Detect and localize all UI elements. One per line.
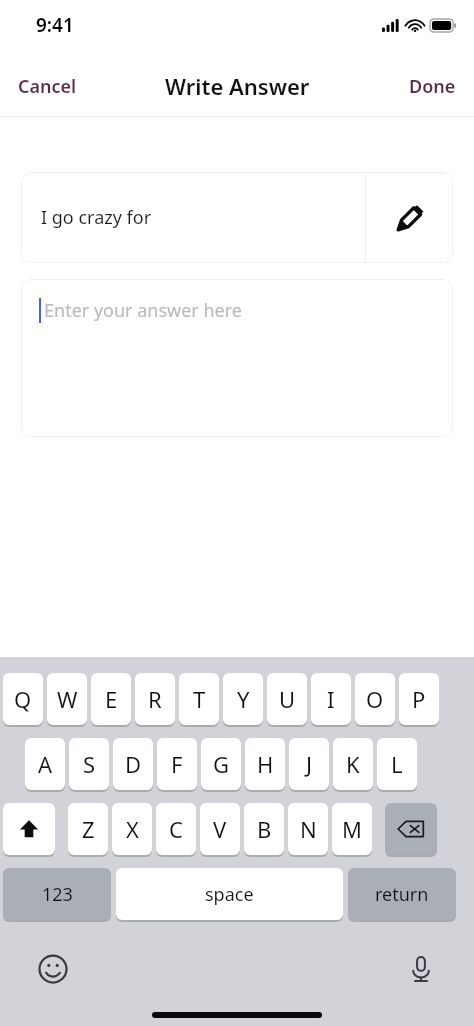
staticText: I	[327, 684, 335, 714]
staticText: space	[205, 882, 254, 907]
staticText: T	[193, 684, 206, 714]
button[interactable]: Z	[68, 802, 108, 856]
staticText: J	[306, 749, 313, 779]
button[interactable]: W	[47, 672, 87, 726]
button[interactable]: 123	[3, 867, 111, 921]
staticText: S	[83, 749, 96, 779]
button[interactable]: Emoji	[33, 949, 73, 989]
staticText: return	[375, 882, 429, 907]
button[interactable]: N	[288, 802, 328, 856]
button[interactable]: K	[333, 737, 373, 791]
staticText: L	[391, 749, 403, 779]
staticText: N	[300, 814, 317, 844]
button[interactable]: D	[113, 737, 153, 791]
staticText: E	[105, 684, 118, 714]
button[interactable]: V	[200, 802, 240, 856]
staticText: D	[125, 749, 142, 779]
button[interactable]: C	[156, 802, 196, 856]
button[interactable]: Backspace	[385, 802, 437, 856]
button[interactable]: O	[355, 672, 395, 726]
button[interactable]: B	[244, 802, 284, 856]
staticText: M	[342, 814, 362, 844]
button[interactable]: E	[91, 672, 131, 726]
button[interactable]: Cancel	[0, 64, 95, 109]
staticText: Write Answer	[165, 71, 310, 101]
button[interactable]: F	[157, 737, 197, 791]
staticText: Z	[82, 814, 95, 844]
button[interactable]: I	[311, 672, 351, 726]
staticText: Done	[409, 74, 456, 99]
button[interactable]: Y	[223, 672, 263, 726]
staticText: G	[213, 749, 230, 779]
button[interactable]: I go crazy for	[21, 172, 453, 263]
button[interactable]: Dictation	[401, 949, 441, 989]
button[interactable]: Shift	[3, 802, 55, 856]
staticText: A	[38, 749, 53, 779]
staticText: I go crazy for	[41, 205, 365, 230]
button[interactable]: space	[116, 867, 343, 921]
staticText: H	[257, 749, 274, 779]
staticText: Q	[14, 684, 32, 714]
staticText: Y	[237, 684, 250, 714]
staticText: 123	[42, 882, 73, 907]
button[interactable]: H	[245, 737, 285, 791]
button[interactable]: R	[135, 672, 175, 726]
button[interactable]: Enter your answer here	[21, 279, 453, 437]
button[interactable]: A	[25, 737, 65, 791]
staticText: U	[279, 684, 296, 714]
staticText: P	[412, 684, 426, 714]
staticText: C	[169, 814, 183, 844]
staticText: B	[257, 814, 272, 844]
staticText: W	[57, 684, 78, 714]
button[interactable]: Edit	[366, 173, 453, 262]
button[interactable]: X	[112, 802, 152, 856]
button[interactable]: U	[267, 672, 307, 726]
staticText: K	[346, 749, 360, 779]
button[interactable]: Done	[391, 64, 474, 109]
button[interactable]: return	[348, 867, 456, 921]
button[interactable]: P	[399, 672, 439, 726]
button[interactable]: T	[179, 672, 219, 726]
staticText: Cancel	[18, 74, 77, 99]
staticText: X	[126, 814, 139, 844]
button[interactable]: L	[377, 737, 417, 791]
button[interactable]: G	[201, 737, 241, 791]
staticText: O	[366, 684, 384, 714]
staticText: R	[148, 684, 162, 714]
staticText: V	[213, 814, 227, 844]
staticText: F	[171, 749, 183, 779]
button[interactable]: S	[69, 737, 109, 791]
staticText: Enter your answer here	[44, 298, 242, 323]
staticText: 9:41	[36, 12, 74, 38]
button[interactable]: Q	[3, 672, 43, 726]
button[interactable]: J	[289, 737, 329, 791]
button[interactable]: M	[332, 802, 372, 856]
